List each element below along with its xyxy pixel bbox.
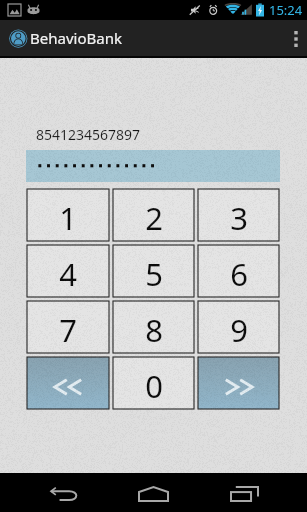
button[interactable]: 6	[198, 245, 279, 297]
staticText: 8541234567897	[36, 125, 141, 144]
staticText: 5	[145, 253, 163, 295]
staticText: 9	[230, 309, 248, 351]
button[interactable]: 9	[198, 301, 279, 353]
staticText: 7	[59, 309, 77, 351]
button[interactable]: 8	[113, 301, 194, 353]
button[interactable]: Back	[0, 473, 109, 512]
button[interactable]: 0	[113, 357, 194, 409]
staticText: 2	[145, 197, 163, 239]
button[interactable]	[198, 357, 279, 409]
staticText: 4	[59, 253, 77, 295]
button[interactable]: 1	[27, 189, 109, 241]
button[interactable]: 3	[198, 189, 279, 241]
button[interactable]: More options	[285, 20, 307, 56]
button[interactable]: 4	[27, 245, 109, 297]
staticText: 8	[145, 309, 163, 351]
button[interactable]: 7	[27, 301, 109, 353]
button[interactable]: 2	[113, 189, 194, 241]
staticText: 6	[230, 253, 248, 295]
button[interactable]: Recent apps	[198, 473, 307, 512]
button[interactable]: Home	[109, 473, 198, 512]
button[interactable]: 5	[113, 245, 194, 297]
button[interactable]	[27, 357, 109, 409]
staticText: 15:24	[269, 1, 303, 19]
staticText: 0	[145, 365, 163, 407]
staticText: 1	[59, 197, 77, 239]
button[interactable]	[26, 150, 280, 182]
staticText: 3	[230, 197, 248, 239]
staticText: BehavioBank	[30, 28, 122, 48]
